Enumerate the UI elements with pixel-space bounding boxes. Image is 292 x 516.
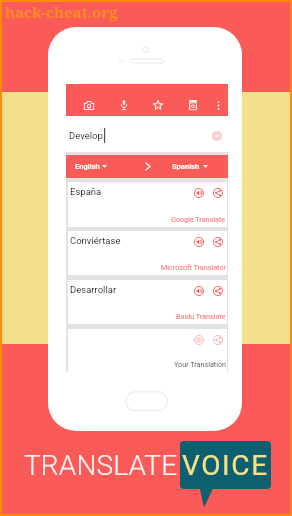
button[interactable]: History <box>184 96 202 114</box>
staticText: Develop <box>69 130 103 141</box>
button[interactable]: Take photo <box>68 329 227 372</box>
staticText: TRANSLATE <box>24 449 178 482</box>
staticText: Baidu Translate <box>176 312 226 320</box>
staticText: hack-cheat.org <box>5 2 118 22</box>
staticText: Spanish <box>172 162 200 171</box>
staticText: Conviértase <box>70 235 121 246</box>
staticText: VOICE <box>182 449 269 482</box>
button[interactable]: Take photo <box>193 334 204 345</box>
button[interactable]: More options <box>209 96 227 114</box>
button[interactable]: Conviértase <box>68 231 227 275</box>
button[interactable]: Share <box>212 334 223 345</box>
button[interactable]: Listen <box>193 236 204 247</box>
button[interactable]: Clear text <box>211 130 222 141</box>
staticText: Your Translation <box>174 360 226 368</box>
button[interactable]: Share <box>212 285 223 296</box>
button[interactable]: Listen <box>193 187 204 198</box>
button[interactable]: Voice input <box>115 96 133 114</box>
staticText: Microsoft Translator <box>161 263 226 271</box>
button[interactable]: Share <box>212 187 223 198</box>
staticText: Desarrollar <box>70 284 117 295</box>
button[interactable]: Listen <box>193 285 204 296</box>
button[interactable]: Camera translate <box>80 96 98 114</box>
button[interactable]: Desarrollar <box>68 280 227 324</box>
staticText: España <box>70 186 102 197</box>
button[interactable]: Favourites <box>149 96 167 114</box>
staticText: English <box>75 162 100 171</box>
button[interactable]: España <box>68 182 227 227</box>
button[interactable]: Share <box>212 236 223 247</box>
button[interactable]: English <box>66 155 228 178</box>
staticText: Google Translate <box>171 215 226 223</box>
